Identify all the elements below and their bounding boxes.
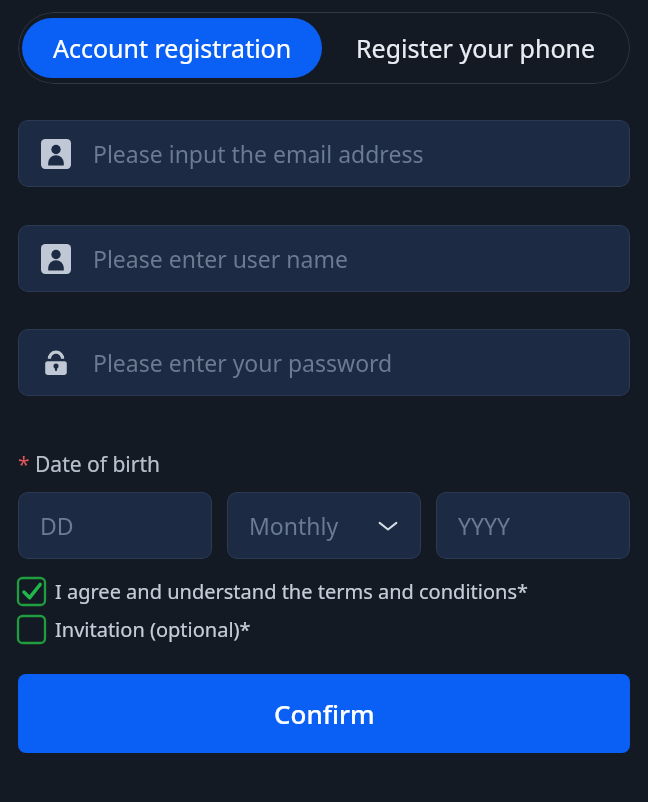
staticText: Confirm — [274, 696, 375, 731]
staticText: Monthly — [249, 510, 339, 541]
button[interactable]: Invitation (optional)* — [18, 616, 630, 643]
button[interactable]: YYYY — [436, 492, 630, 559]
staticText: DD — [40, 510, 74, 541]
staticText: Invitation (optional)* — [55, 616, 251, 643]
staticText: Register your phone — [356, 31, 596, 65]
button[interactable]: Please enter your password — [18, 329, 630, 396]
button[interactable]: Confirm — [18, 674, 630, 753]
staticText: Please enter your password — [93, 347, 393, 378]
staticText: Please input the email address — [93, 138, 424, 169]
button[interactable]: I agree and understand the terms and con… — [18, 578, 630, 605]
button[interactable]: Please input the email address — [18, 120, 630, 187]
staticText: I agree and understand the terms and con… — [55, 578, 528, 605]
button[interactable]: Monthly — [227, 492, 421, 559]
staticText: Please enter user name — [93, 243, 348, 274]
staticText: * Date of birth — [18, 450, 160, 479]
button[interactable]: DD — [18, 492, 212, 559]
button[interactable]: Register your phone — [322, 12, 630, 84]
staticText: Account registration — [53, 31, 292, 65]
staticText: YYYY — [458, 510, 511, 541]
button[interactable]: Please enter user name — [18, 225, 630, 292]
other: Select month — [377, 515, 399, 537]
button[interactable]: Account registration — [22, 18, 322, 78]
